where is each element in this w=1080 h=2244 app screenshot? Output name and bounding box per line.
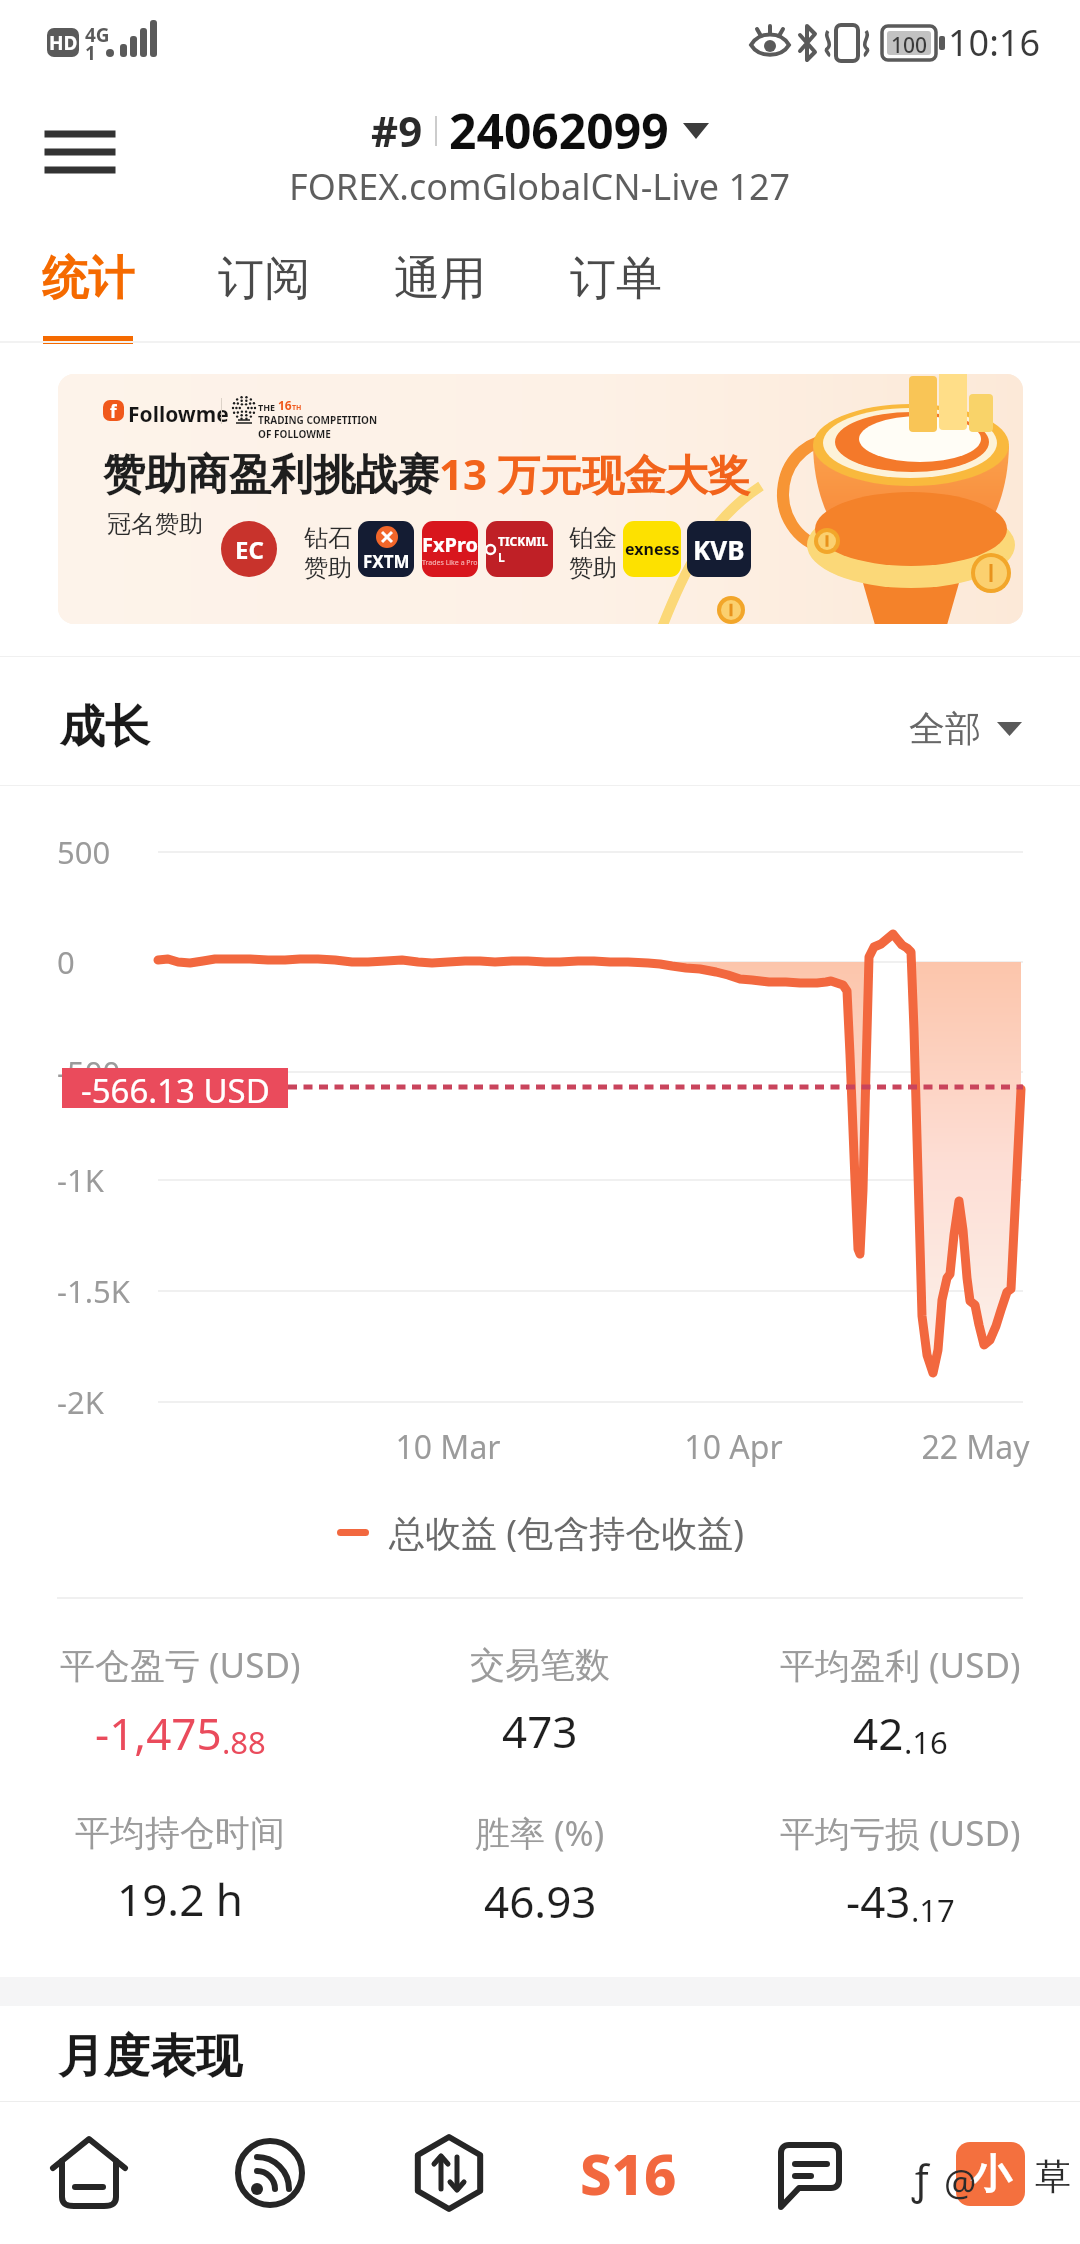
staticText: TICKMILL xyxy=(498,533,553,565)
staticText: OF FOLLOWME xyxy=(258,427,331,441)
staticText: 全部 xyxy=(909,706,981,751)
button[interactable]: 通用 xyxy=(360,222,520,346)
staticText: TRADING COMPETITION xyxy=(258,413,378,427)
staticText: 10:16 xyxy=(948,18,1041,67)
staticText: 平均持仓时间 xyxy=(75,1811,285,1855)
staticText: 交易笔数 xyxy=(470,1643,610,1687)
staticText: TH xyxy=(292,403,302,413)
staticText: -500 xyxy=(57,1051,121,1093)
staticText: 胜率 (%) xyxy=(475,1809,605,1857)
staticText: HD xyxy=(49,30,78,56)
staticText: 平均盈利 (USD) xyxy=(780,1641,1021,1689)
staticText: 19.2 h xyxy=(117,1869,243,1929)
staticText: -1K xyxy=(57,1159,104,1201)
staticText: @ xyxy=(944,2158,977,2207)
button[interactable]: Transfer xyxy=(379,2101,519,2244)
staticText: 月度表现 xyxy=(58,2028,242,2086)
staticText: 46.93 xyxy=(484,1871,597,1931)
staticText: -1.5K xyxy=(57,1270,130,1312)
staticText: 24062099 xyxy=(449,98,669,163)
button[interactable]: Home xyxy=(19,2101,159,2244)
staticText: 0 xyxy=(57,941,75,983)
staticText: FXTM xyxy=(363,550,410,573)
staticText: -43 xyxy=(846,1871,911,1931)
staticText: Followme xyxy=(128,400,229,429)
button[interactable]: Messages xyxy=(740,2101,880,2244)
button[interactable]: S16 xyxy=(558,2101,698,2244)
staticText: THE xyxy=(258,401,278,413)
staticText: 订阅 xyxy=(218,250,310,308)
button[interactable]: Menu xyxy=(30,108,130,196)
staticText: 冠名赞助 xyxy=(107,509,203,539)
staticText: 500 xyxy=(57,831,111,873)
staticText: KVB xyxy=(693,532,745,567)
staticText: 钻石 xyxy=(304,523,352,553)
button[interactable]: f xyxy=(58,374,1023,624)
button[interactable]: 全部 xyxy=(909,706,1022,751)
staticText: 小 xyxy=(971,2149,1011,2199)
staticText: .88 xyxy=(222,1721,266,1763)
staticText: 统计 xyxy=(42,250,134,308)
button[interactable]: 统计 xyxy=(8,222,168,346)
staticText: FOREX.comGlobalCN-Live 127 xyxy=(289,162,791,211)
button[interactable]: 订单 xyxy=(536,222,696,346)
staticText: 通用 xyxy=(394,250,486,308)
staticText: #9 xyxy=(371,102,423,159)
staticText: 10 Apr xyxy=(684,1425,783,1469)
staticText: 10 Mar xyxy=(395,1425,501,1469)
staticText: 铂金 xyxy=(569,523,617,553)
staticText: S16 xyxy=(580,2135,677,2211)
staticText: 赞助 xyxy=(304,553,352,583)
staticText: -1,475 xyxy=(95,1703,222,1763)
staticText: 成长 xyxy=(60,699,150,756)
button[interactable]: 订阅 xyxy=(184,222,344,346)
staticText: .16 xyxy=(904,1721,948,1763)
staticText: 4G xyxy=(85,22,110,48)
staticText: 赞助商盈利挑战赛 xyxy=(103,449,439,502)
staticText: 平仓盈亏 (USD) xyxy=(60,1641,301,1689)
staticText: 16 xyxy=(278,397,292,413)
staticText: 473 xyxy=(502,1701,578,1761)
staticText: 1 xyxy=(85,40,96,66)
staticText: 总收益 (包含持仓收益) xyxy=(389,1508,744,1557)
button[interactable]: Feed xyxy=(200,2101,340,2244)
staticText: FxPro xyxy=(422,531,478,558)
staticText: ƒ xyxy=(912,2151,929,2205)
staticText: Trades Like a Pro xyxy=(422,558,478,568)
staticText: 平均亏损 (USD) xyxy=(780,1809,1021,1857)
staticText: -566.13 USD xyxy=(81,1068,270,1108)
staticText: .17 xyxy=(911,1889,955,1931)
staticText: -2K xyxy=(57,1381,104,1423)
staticText: exness xyxy=(625,538,680,560)
staticText: 草 xyxy=(1035,2154,1071,2199)
staticText: f xyxy=(110,400,117,421)
staticText: 100 xyxy=(891,31,928,55)
staticText: 赞助 xyxy=(569,553,617,583)
staticText: 22 May xyxy=(921,1425,1030,1469)
staticText: 42 xyxy=(853,1703,904,1763)
staticText: 订单 xyxy=(570,250,662,308)
staticText: EC xyxy=(235,533,264,566)
staticText: 13 万元现金大奖 xyxy=(439,445,750,502)
